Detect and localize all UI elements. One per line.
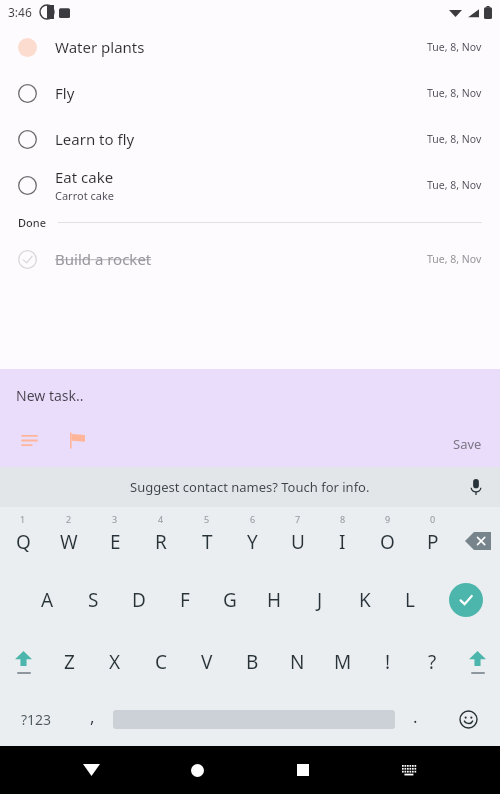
staticText: R [155, 529, 167, 555]
button[interactable]: Learn to fly [0, 116, 500, 162]
button[interactable]: 2 [46, 507, 92, 569]
button[interactable]: A [24, 569, 70, 631]
staticText: Tue, 8, Nov [427, 40, 482, 54]
staticText: L [405, 587, 415, 613]
staticText: 7 [295, 513, 301, 525]
button[interactable]: 7 [275, 507, 320, 569]
staticText: J [317, 587, 323, 613]
button[interactable]: G [207, 569, 252, 631]
staticText: C [155, 649, 168, 675]
button[interactable]: X [92, 631, 138, 693]
staticText: Q [16, 529, 31, 555]
button[interactable]: N [275, 631, 320, 693]
button[interactable]: , [72, 693, 113, 746]
staticText: . [413, 705, 418, 728]
staticText: F [180, 587, 190, 613]
staticText: , [90, 705, 95, 728]
button[interactable]: Back [69, 748, 113, 792]
button[interactable]: Suggest contact names? Touch for info. [130, 478, 370, 496]
staticText: 5 [204, 513, 210, 525]
staticText: 0 [430, 513, 436, 525]
staticText: Save [453, 435, 482, 453]
staticText: Learn to fly [55, 129, 135, 149]
staticText: G [223, 587, 237, 613]
button[interactable]: 8 [320, 507, 365, 569]
button[interactable]: B [230, 631, 275, 693]
button[interactable]: Z [46, 631, 92, 693]
button[interactable]: H [252, 569, 297, 631]
button[interactable]: 9 [365, 507, 410, 569]
staticText: Tue, 8, Nov [427, 178, 482, 192]
button[interactable]: 4 [138, 507, 184, 569]
staticText: O [380, 529, 395, 555]
staticText: Eat cake [55, 167, 114, 187]
button[interactable]: M [320, 631, 365, 693]
button[interactable]: 3 [92, 507, 138, 569]
button[interactable]: Eat cake [0, 162, 500, 208]
button[interactable]: Switch keyboard [387, 748, 431, 792]
staticText: A [41, 587, 54, 613]
button[interactable]: Fly [0, 70, 500, 116]
staticText: P [427, 529, 439, 555]
button[interactable]: Water plants [0, 24, 500, 70]
staticText: 1 [20, 513, 26, 525]
button[interactable]: Shift [455, 631, 500, 693]
staticText: Tue, 8, Nov [427, 252, 482, 266]
button[interactable]: D [116, 569, 162, 631]
button[interactable] [113, 693, 395, 746]
button[interactable]: V [184, 631, 230, 693]
button[interactable]: J [297, 569, 342, 631]
button[interactable]: Backspace [455, 507, 500, 569]
staticText: ?123 [21, 710, 52, 729]
button[interactable]: ? [410, 631, 455, 693]
staticText: Carrot cake [55, 188, 115, 203]
button[interactable]: Set priority [64, 427, 90, 453]
button[interactable]: Enter [432, 569, 500, 631]
staticText: W [60, 529, 78, 555]
staticText: N [290, 649, 305, 675]
staticText: U [291, 529, 305, 555]
staticText: Z [64, 649, 75, 675]
staticText: New task.. [16, 386, 84, 405]
staticText: 3:46 [8, 4, 32, 20]
staticText: M [334, 649, 352, 675]
button[interactable]: K [342, 569, 387, 631]
button[interactable]: Recent apps [281, 748, 325, 792]
button[interactable]: Voice input [462, 473, 490, 501]
staticText: 3 [112, 513, 118, 525]
button[interactable]: F [162, 569, 207, 631]
button[interactable]: S [70, 569, 116, 631]
button[interactable]: ! [365, 631, 410, 693]
staticText: ? [428, 649, 437, 675]
button[interactable]: 0 [410, 507, 455, 569]
staticText: I [339, 529, 346, 555]
button[interactable]: 5 [184, 507, 230, 569]
staticText: Tue, 8, Nov [427, 132, 482, 146]
button[interactable]: C [138, 631, 184, 693]
staticText: T [202, 529, 213, 555]
staticText: K [359, 587, 371, 613]
staticText: X [109, 649, 121, 675]
button[interactable]: Save [443, 427, 492, 461]
staticText: Fly [55, 83, 75, 103]
button[interactable]: 1 [0, 507, 46, 569]
staticText: 2 [66, 513, 72, 525]
button[interactable]: L [387, 569, 432, 631]
staticText: Water plants [55, 37, 145, 57]
button[interactable]: Shift [0, 631, 46, 693]
staticText: V [201, 649, 213, 675]
button[interactable]: 6 [230, 507, 275, 569]
staticText: B [246, 649, 259, 675]
staticText: H [267, 587, 282, 613]
staticText: 4 [158, 513, 164, 525]
staticText: 6 [250, 513, 256, 525]
button[interactable]: Emoji [436, 693, 500, 746]
staticText: S [88, 587, 99, 613]
button[interactable]: Build a rocket [0, 236, 500, 282]
button[interactable]: Add details [16, 427, 42, 453]
button[interactable]: . [395, 693, 436, 746]
staticText: ! [385, 649, 391, 675]
button[interactable]: ?123 [0, 693, 72, 746]
button[interactable]: Home [175, 748, 219, 792]
staticText: E [110, 529, 121, 555]
